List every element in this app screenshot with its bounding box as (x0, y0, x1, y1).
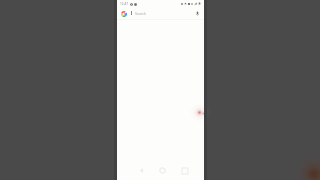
button[interactable]: Home (156, 164, 169, 177)
button[interactable]: Google (120, 10, 127, 17)
button[interactable]: Voice search (193, 9, 201, 17)
button[interactable]: Recent apps (178, 164, 191, 177)
button[interactable]: Search (127, 7, 193, 19)
button[interactable]: Back (135, 164, 148, 177)
staticText: Search (135, 11, 146, 16)
staticText: 12:47 (120, 2, 129, 6)
